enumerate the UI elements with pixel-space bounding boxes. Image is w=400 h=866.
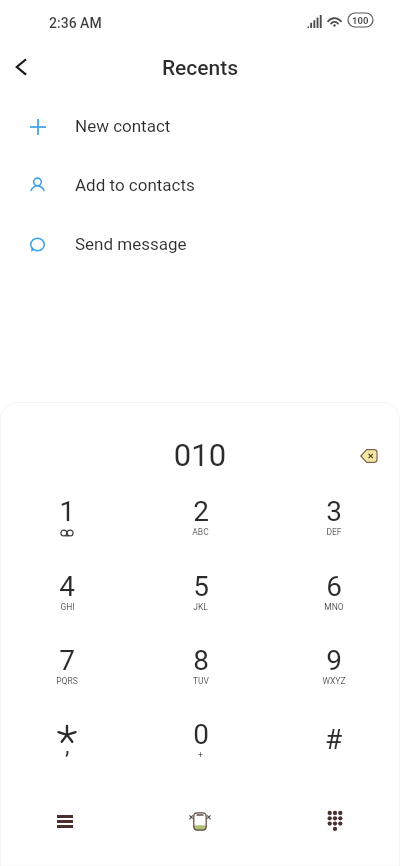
button[interactable]: 0 [134, 711, 267, 785]
button[interactable]: 4 [0, 563, 134, 637]
button[interactable]: Vibrate [157, 782, 243, 860]
button[interactable]: 5 [134, 563, 267, 637]
staticText: 010 [0, 437, 400, 473]
button[interactable]: 3 [267, 488, 400, 562]
button[interactable]: Call log [22, 782, 108, 860]
staticText: 8 [193, 644, 209, 677]
staticText: ABC [192, 527, 209, 537]
button[interactable]: Add to contacts [0, 155, 400, 214]
button[interactable]: Back [0, 45, 43, 89]
staticText: 7 [59, 644, 75, 677]
button[interactable]: 6 [267, 563, 400, 637]
staticText: DEF [326, 527, 342, 537]
staticText: 6 [326, 570, 342, 603]
staticText: 3 [326, 495, 342, 528]
staticText: PQRS [56, 676, 78, 686]
staticText: # [325, 723, 343, 756]
button[interactable]: 2 [134, 488, 267, 562]
staticText: WXYZ [322, 676, 346, 686]
staticText: 2 [193, 495, 209, 528]
staticText: MNO [324, 602, 344, 612]
button[interactable]: 1 [0, 488, 134, 562]
button[interactable]: Send message [0, 214, 400, 273]
button[interactable]: 7 [0, 637, 134, 711]
staticText: JKL [193, 602, 208, 612]
button[interactable]: , [0, 711, 134, 785]
staticText: Recents [0, 56, 400, 81]
staticText: GHI [60, 602, 75, 612]
staticText: Send message [75, 234, 187, 254]
staticText: 100 [352, 15, 369, 26]
staticText: + [198, 750, 203, 760]
button[interactable]: Backspace [346, 434, 390, 478]
staticText: 9 [326, 644, 342, 677]
staticText: Add to contacts [75, 175, 195, 195]
staticText: TUV [193, 676, 209, 686]
staticText: 2:36 AM [49, 15, 102, 31]
staticText: New contact [75, 116, 171, 136]
staticText: 0 [193, 718, 209, 751]
button[interactable]: New contact [0, 96, 400, 155]
button[interactable]: Dialpad [292, 782, 378, 860]
button[interactable]: # [267, 711, 400, 785]
staticText: 5 [193, 570, 209, 603]
staticText: , [65, 733, 70, 760]
staticText: 1 [59, 495, 75, 528]
staticText: 4 [59, 570, 75, 603]
button[interactable]: 8 [134, 637, 267, 711]
button[interactable]: 9 [267, 637, 400, 711]
